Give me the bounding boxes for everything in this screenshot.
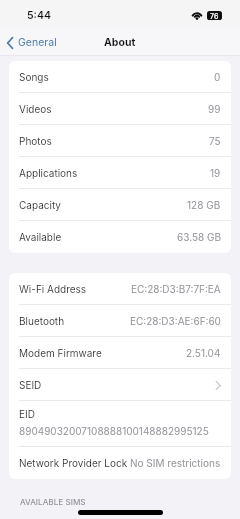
button[interactable]: Bluetooth: [9, 305, 231, 337]
staticText: Modem Firmware: [19, 347, 102, 359]
button[interactable]: SEID: [9, 369, 231, 401]
staticText: Network Provider Lock: [19, 457, 128, 469]
other: Open SEID: [215, 381, 221, 390]
staticText: 63.58 GB: [177, 231, 221, 243]
other: Battery 76 percent: [207, 11, 222, 20]
staticText: No SIM restrictions: [130, 457, 221, 469]
staticText: Photos: [19, 135, 52, 147]
staticText: Applications: [19, 167, 78, 179]
staticText: 99: [208, 103, 221, 115]
staticText: 2.51.04: [186, 347, 221, 359]
staticText: 76: [210, 12, 219, 20]
button[interactable]: Applications: [9, 157, 231, 189]
button[interactable]: Songs: [9, 61, 231, 93]
staticText: 75: [209, 135, 221, 147]
button[interactable]: Available: [9, 221, 231, 253]
staticText: 5:44: [27, 9, 51, 22]
staticText: Videos: [19, 103, 52, 115]
staticText: Songs: [19, 71, 49, 83]
button[interactable]: Capacity: [9, 189, 231, 221]
button[interactable]: Network Provider Lock: [9, 447, 231, 479]
button[interactable]: General: [0, 36, 61, 49]
button[interactable]: Photos: [9, 125, 231, 157]
staticText: Available: [19, 231, 62, 243]
button[interactable]: EID: [9, 401, 231, 447]
staticText: Capacity: [19, 199, 61, 211]
button[interactable]: Videos: [9, 93, 231, 125]
staticText: 19: [210, 167, 221, 179]
staticText: SEID: [19, 379, 42, 391]
staticText: General: [18, 36, 57, 49]
staticText: EID: [19, 408, 35, 420]
staticText: About: [104, 36, 136, 49]
staticText: EC:28:D3:B7:7F:EA: [131, 283, 221, 295]
staticText: 0: [214, 71, 221, 83]
staticText: 128 GB: [187, 199, 221, 211]
staticText: AVAILABLE SIMS: [20, 497, 86, 507]
staticText: 89049032007108888100148882995125: [19, 425, 209, 437]
staticText: Bluetooth: [19, 315, 65, 327]
button[interactable]: Wi-Fi Address: [9, 273, 231, 305]
button[interactable]: Modem Firmware: [9, 337, 231, 369]
staticText: EC:28:D3:AE:6F:60: [130, 315, 221, 327]
staticText: Wi-Fi Address: [19, 283, 87, 295]
other: Wi-Fi signal: [191, 10, 203, 20]
